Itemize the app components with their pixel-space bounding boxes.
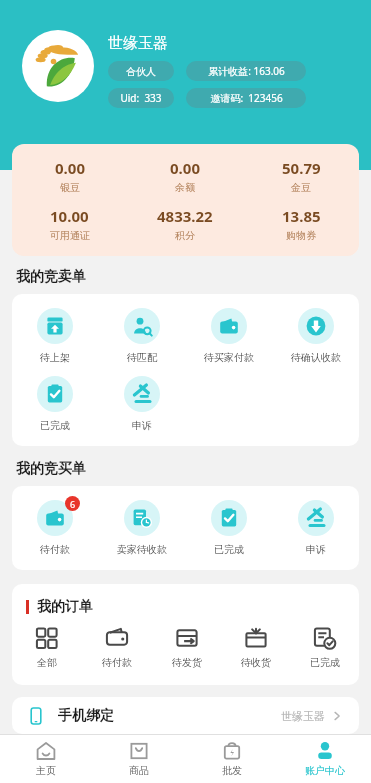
button[interactable]: 主页 <box>0 735 92 783</box>
button[interactable]: 0.00 <box>12 158 127 194</box>
staticText: 我的竞卖单 <box>16 268 86 286</box>
staticText: 待买家付款 <box>204 351 254 364</box>
staticText: 余额 <box>175 181 195 194</box>
button[interactable]: 0.00 <box>127 158 243 194</box>
staticText: 批发 <box>222 764 242 777</box>
button[interactable]: 13.85 <box>243 206 359 242</box>
staticText: 待发货 <box>172 656 202 669</box>
button[interactable]: 手机绑定 <box>12 697 359 734</box>
staticText: 卖家待收款 <box>117 543 167 556</box>
button[interactable]: 批发 <box>185 735 278 783</box>
button[interactable]: 全部 <box>12 626 82 669</box>
staticText: 世缘玉器 <box>108 34 168 53</box>
staticText: 全部 <box>37 656 57 669</box>
button[interactable]: 已完成 <box>290 626 359 669</box>
button[interactable]: 已完成 <box>185 500 272 556</box>
staticText: 待确认收款 <box>291 351 341 364</box>
staticText: 0.00 <box>170 158 200 178</box>
button[interactable]: 6 <box>12 500 98 556</box>
staticText: 已完成 <box>40 419 70 432</box>
button[interactable]: 邀请码: 123456 <box>186 88 306 108</box>
button[interactable]: 待匹配 <box>98 308 185 364</box>
staticText: 4833.22 <box>157 206 213 226</box>
button[interactable]: 待上架 <box>12 308 98 364</box>
button[interactable]: 累计收益: 163.06 <box>186 61 306 81</box>
staticText: 手机绑定 <box>58 707 114 725</box>
staticText: 待付款 <box>102 656 132 669</box>
staticText: 待上架 <box>40 351 70 364</box>
button[interactable]: 待买家付款 <box>185 308 272 364</box>
staticText: 申诉 <box>306 543 326 556</box>
staticText: 已完成 <box>214 543 244 556</box>
staticText: 待匹配 <box>127 351 157 364</box>
staticText: 邀请码: 123456 <box>210 91 283 105</box>
staticText: 累计收益: 163.06 <box>208 64 285 78</box>
button[interactable]: 待确认收款 <box>272 308 359 364</box>
button[interactable]: 10.00 <box>12 206 127 242</box>
staticText: 世缘玉器 <box>281 709 325 723</box>
staticText: 13.85 <box>282 206 321 226</box>
button[interactable]: 待付款 <box>82 626 152 669</box>
button[interactable]: 商品 <box>92 735 185 783</box>
button[interactable]: 申诉 <box>272 500 359 556</box>
button[interactable]: 我的订单 <box>26 598 93 616</box>
staticText: 金豆 <box>291 181 311 194</box>
staticText: 6 <box>70 498 76 510</box>
staticText: 10.00 <box>50 206 89 226</box>
staticText: 申诉 <box>132 419 152 432</box>
button[interactable]: 已完成 <box>12 376 98 432</box>
staticText: 银豆 <box>60 181 80 194</box>
staticText: 50.79 <box>282 158 321 178</box>
button[interactable]: 账户中心 <box>278 735 371 783</box>
button[interactable]: 待收货 <box>221 626 290 669</box>
staticText: 0.00 <box>55 158 85 178</box>
staticText: 我的竞买单 <box>16 460 86 478</box>
staticText: 合伙人 <box>126 65 156 78</box>
staticText: 主页 <box>36 764 56 777</box>
button[interactable]: 待发货 <box>152 626 221 669</box>
staticText: 已完成 <box>310 656 340 669</box>
staticText: 账户中心 <box>305 764 345 777</box>
staticText: 我的订单 <box>37 598 93 616</box>
button[interactable]: 卖家待收款 <box>98 500 185 556</box>
button[interactable]: 合伙人 <box>108 61 174 81</box>
button[interactable]: 申诉 <box>98 376 185 432</box>
button[interactable]: 4833.22 <box>127 206 243 242</box>
staticText: 商品 <box>129 764 149 777</box>
staticText: 积分 <box>175 229 195 242</box>
staticText: Uid: 333 <box>120 91 162 105</box>
staticText: 待付款 <box>40 543 70 556</box>
button[interactable]: 50.79 <box>243 158 359 194</box>
staticText: 待收货 <box>241 656 271 669</box>
button[interactable] <box>22 30 94 102</box>
staticText: 可用通证 <box>50 229 90 242</box>
staticText: 购物券 <box>286 229 316 242</box>
button[interactable]: Uid: 333 <box>108 88 174 108</box>
